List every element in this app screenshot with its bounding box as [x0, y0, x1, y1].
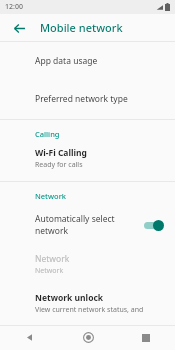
button[interactable]: Back — [0, 325, 59, 350]
staticText: Mobile network — [40, 20, 123, 35]
button[interactable]: Network — [0, 246, 175, 285]
staticText: Network — [35, 253, 70, 265]
button[interactable]: Back — [7, 16, 31, 40]
staticText: Network — [35, 191, 66, 201]
staticText: Wi-Fi Calling — [35, 147, 87, 159]
button[interactable]: Network unlock — [0, 285, 175, 325]
button[interactable]: App data usage — [0, 42, 175, 80]
button[interactable]: Recent apps — [117, 325, 175, 350]
staticText: Network unlock — [35, 292, 104, 304]
staticText: Calling — [35, 129, 60, 139]
staticText: Network — [35, 266, 64, 276]
button[interactable]: Automatically select network — [0, 204, 175, 246]
staticText: Automatically select network — [35, 213, 143, 237]
button[interactable]: Home — [59, 325, 117, 350]
staticText: View current network status, and inquire… — [35, 305, 163, 316]
staticText: App data usage — [35, 55, 98, 67]
staticText: 12:00 — [5, 2, 23, 12]
staticText: Ready for calls — [35, 160, 83, 170]
button[interactable]: Preferred network type — [0, 80, 175, 119]
button[interactable]: Wi-Fi Calling — [0, 142, 175, 175]
staticText: Preferred network type — [35, 93, 128, 105]
